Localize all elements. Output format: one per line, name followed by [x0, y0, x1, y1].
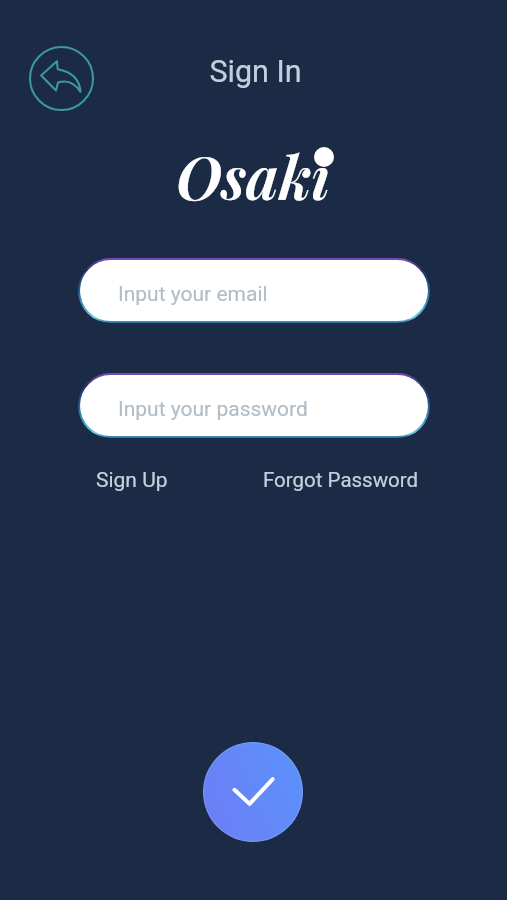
staticText: Sign Up	[96, 468, 168, 493]
button[interactable]: Confirm	[203, 742, 303, 842]
staticText: Sign In	[2, 54, 507, 90]
button[interactable]: Back	[28, 45, 95, 112]
button[interactable]: Input your password	[80, 375, 428, 436]
button[interactable]: Input your email	[80, 260, 428, 321]
staticText: Forgot Password	[263, 468, 419, 492]
staticText: Input your password	[118, 397, 308, 422]
button[interactable]: Sign Up	[89, 463, 175, 498]
button[interactable]: Forgot Password	[256, 463, 426, 497]
staticText: Osakı	[176, 135, 331, 215]
staticText: Input your email	[118, 282, 268, 307]
